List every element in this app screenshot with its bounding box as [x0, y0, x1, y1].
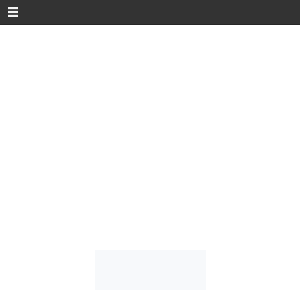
button[interactable]: Open navigation menu: [4, 3, 22, 21]
